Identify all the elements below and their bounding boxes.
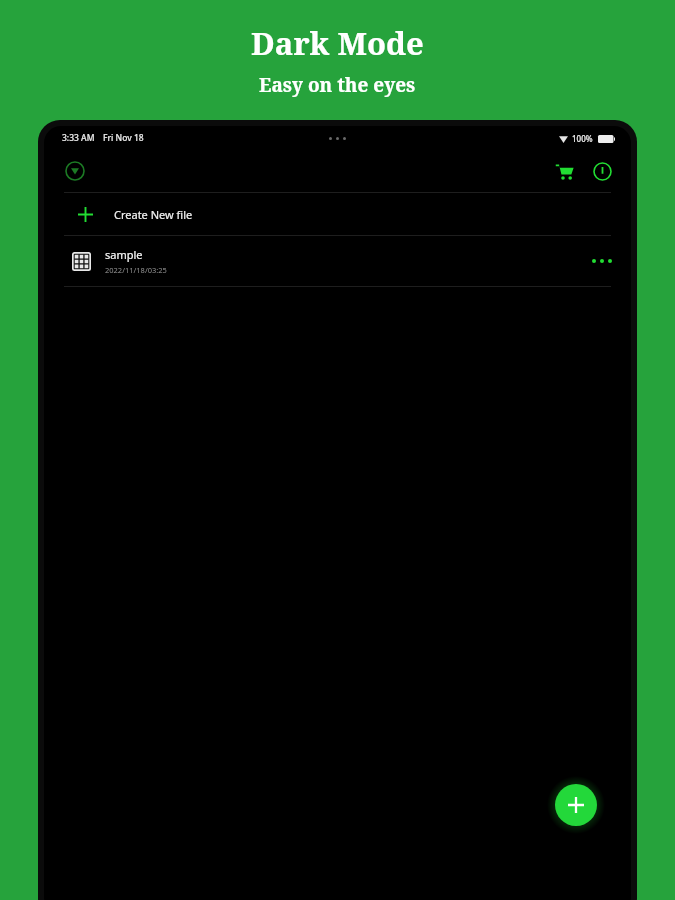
staticText: Dark Mode: [251, 22, 424, 64]
button[interactable]: Sort: [58, 154, 92, 188]
button[interactable]: Store: [547, 154, 581, 188]
staticText: Create New file: [114, 207, 193, 222]
button[interactable]: sample: [44, 236, 631, 286]
staticText: 3:33 AM: [62, 132, 95, 144]
button[interactable]: More options: [585, 244, 619, 278]
staticText: Easy on the eyes: [259, 72, 416, 98]
staticText: 100%: [572, 133, 593, 144]
staticText: 2022/11/18/03:25: [105, 265, 167, 275]
staticText: sample: [105, 247, 143, 262]
staticText: Fri Nov 18: [103, 132, 144, 144]
button[interactable]: Create New file: [44, 193, 631, 235]
button[interactable]: Info: [585, 154, 619, 188]
button[interactable]: Create: [555, 784, 597, 826]
